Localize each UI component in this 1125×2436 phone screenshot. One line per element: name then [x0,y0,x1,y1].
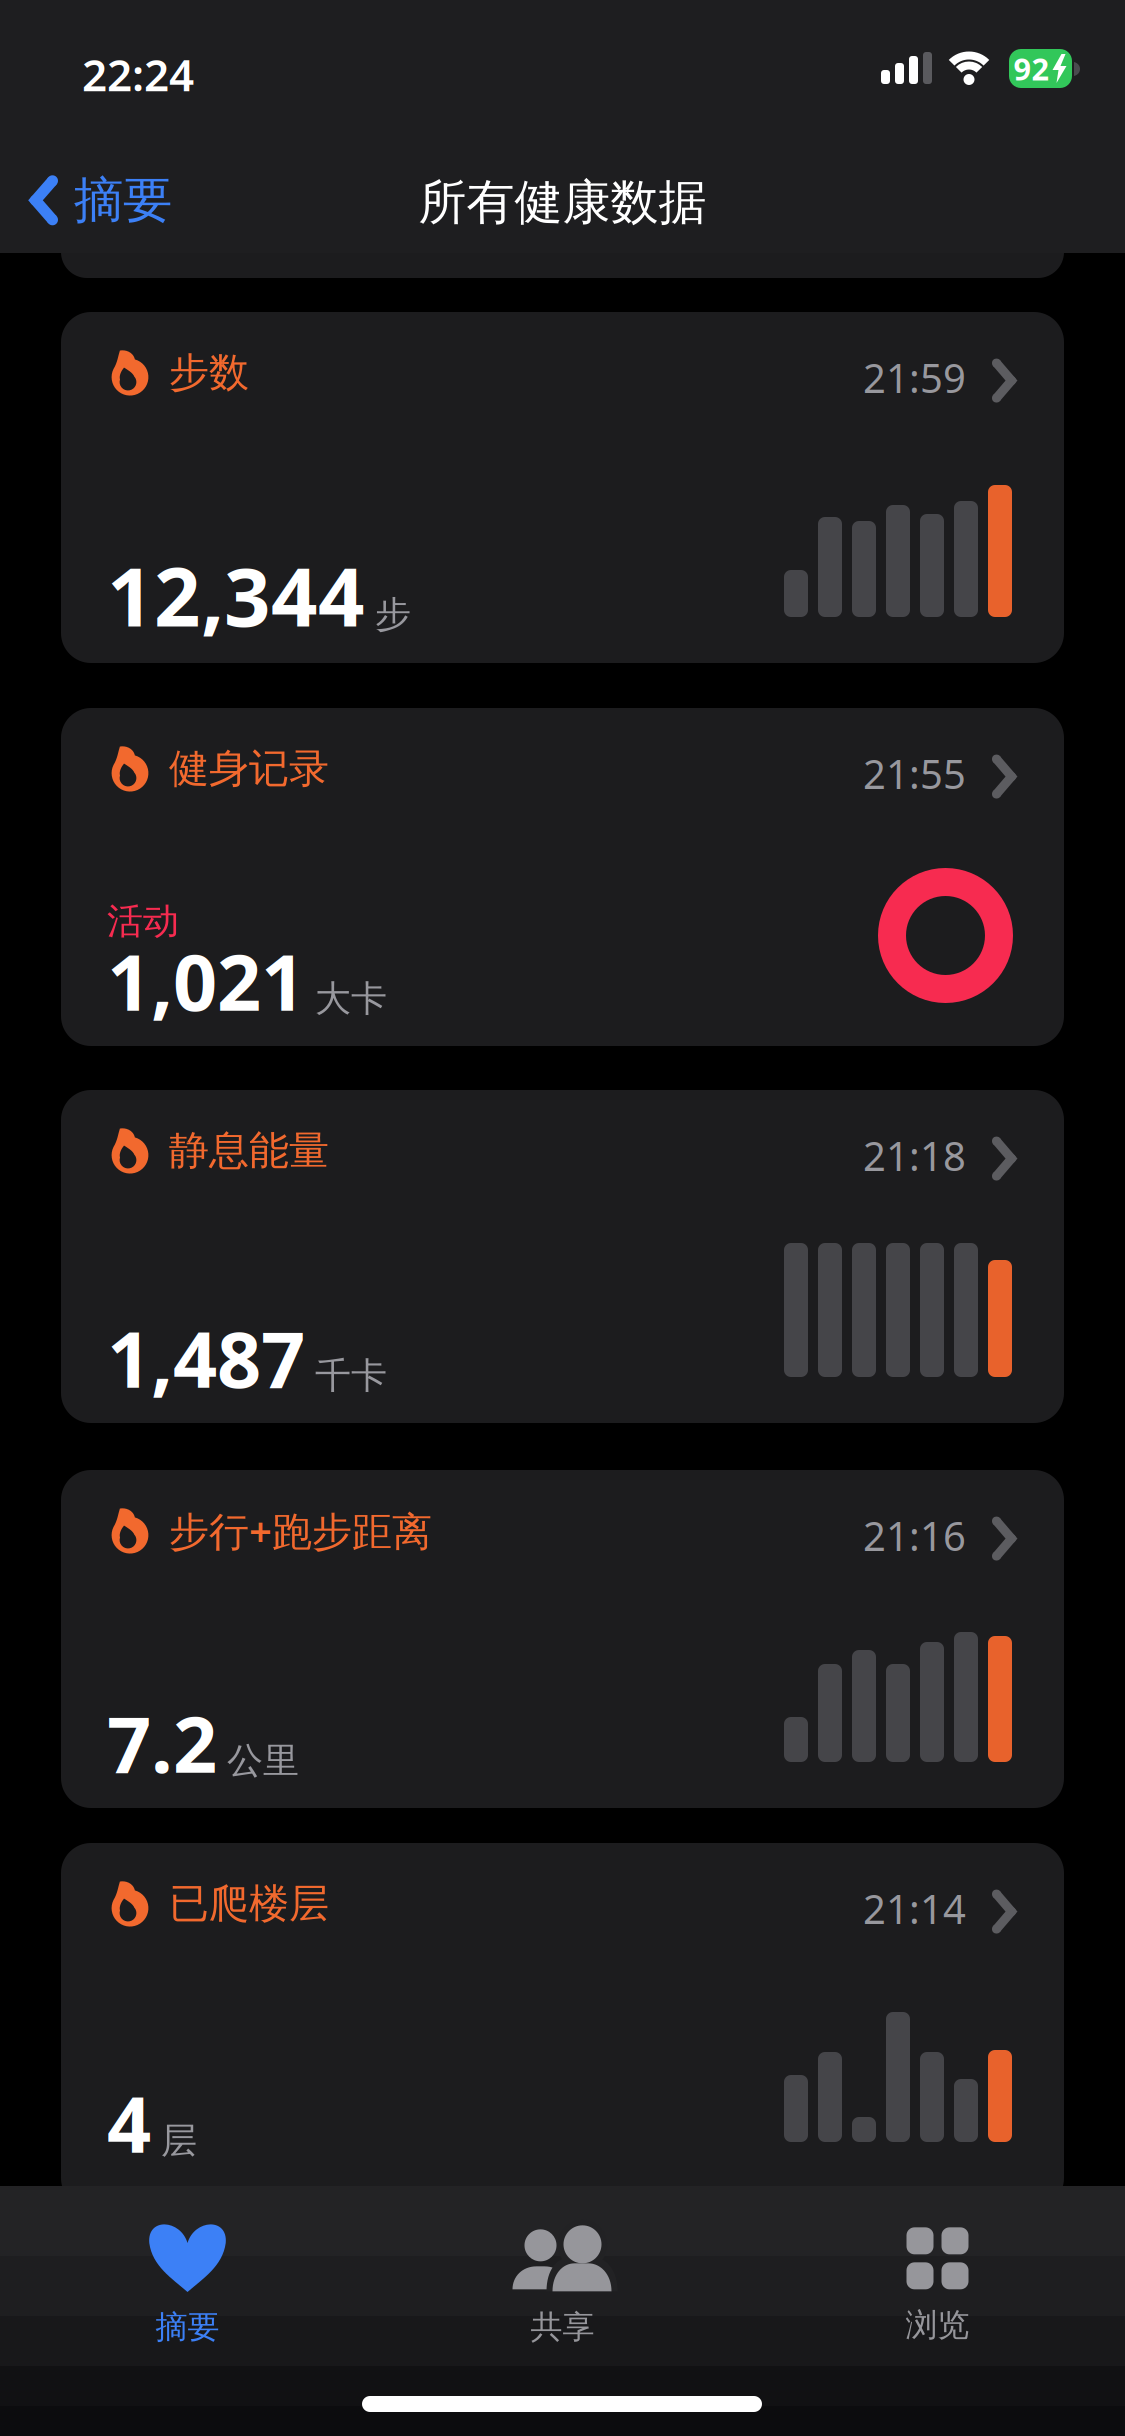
staticText: 21:55 [863,747,966,800]
staticText: 21:16 [863,1509,966,1562]
button[interactable]: 浏览 [750,2206,1125,2366]
button[interactable]: 健身记录 [61,708,1064,1046]
staticText: 大卡 [315,977,387,1021]
staticText: 步 [375,592,411,637]
staticText: 12,344 [107,541,365,649]
button[interactable]: 摘要 [0,2206,375,2366]
staticText: 所有健康数据 [418,173,706,232]
staticText: 步行+跑步距离 [169,1504,432,1557]
staticText: 摘要 [74,170,172,231]
button[interactable]: 步行+跑步距离 [61,1470,1064,1808]
staticText: 健身记录 [169,744,329,793]
staticText: 静息能量 [169,1126,329,1175]
button[interactable]: 已爬楼层 [61,1853,1064,2198]
staticText: 浏览 [905,2305,969,2345]
staticText: 已爬楼层 [169,1879,329,1928]
button[interactable]: 步数 [61,312,1064,663]
staticText: 活动 [107,899,179,943]
staticText: 层 [161,2119,197,2163]
staticText: 千卡 [315,1354,387,1398]
staticText: 7.2 [107,1691,217,1794]
staticText: 1,487 [107,1306,305,1409]
staticText: 1,021 [107,929,305,1032]
staticText: 21:59 [863,351,966,404]
staticText: 摘要 [155,2307,219,2347]
staticText: 92 [1013,48,1049,89]
staticText: 公里 [227,1739,299,1783]
button[interactable]: 摘要 [30,170,172,231]
staticText: 21:18 [863,1129,966,1182]
staticText: 步数 [169,348,249,397]
button[interactable]: 共享 [375,2206,750,2366]
staticText: 4 [107,2071,151,2174]
staticText: 22:24 [82,45,194,103]
staticText: 21:14 [863,1882,966,1935]
button[interactable]: 静息能量 [61,1090,1064,1423]
staticText: 共享 [530,2307,594,2347]
